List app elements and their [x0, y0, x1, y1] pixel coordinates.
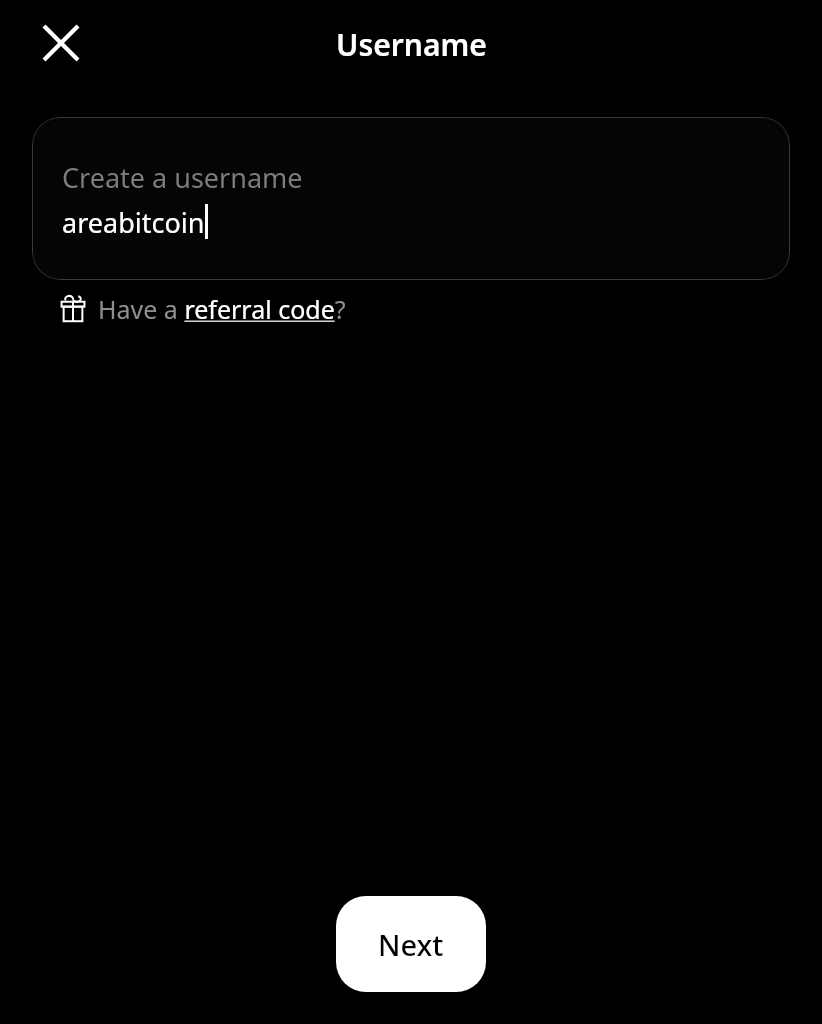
button[interactable]: Have a referral code? — [60, 286, 346, 332]
staticText: Username — [336, 24, 487, 65]
button[interactable]: Close — [30, 12, 92, 74]
button[interactable]: Next — [336, 896, 486, 992]
staticText: Create a username — [62, 159, 303, 196]
staticText: Next — [378, 925, 444, 964]
staticText: areabitcoin — [62, 204, 205, 241]
staticText: Have a referral code? — [98, 292, 346, 326]
button[interactable]: Create a username — [32, 117, 790, 280]
